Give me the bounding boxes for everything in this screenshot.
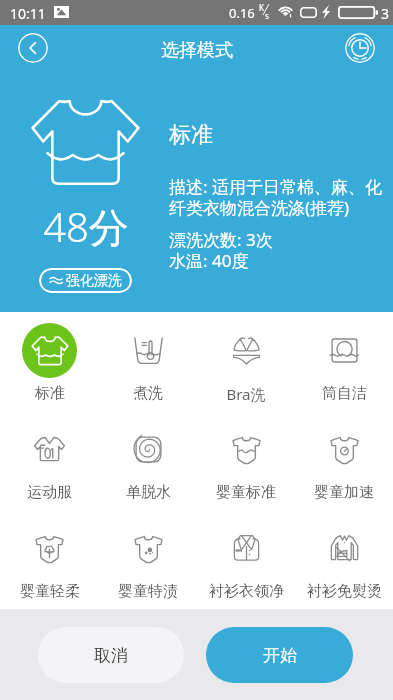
staticText: 描述: 适用于日常棉、麻、化 纤类衣物混合洗涤(推荐): [169, 175, 382, 220]
staticText: 取消: [94, 645, 128, 666]
button[interactable]: 单脱水: [99, 411, 197, 510]
staticText: 运动服: [27, 483, 72, 502]
button[interactable]: 婴童加速: [295, 411, 393, 510]
button[interactable]: 强化漂洗: [39, 268, 132, 293]
staticText: 选择模式: [161, 39, 233, 62]
staticText: 婴童标准: [216, 483, 276, 502]
button[interactable]: 衬衫衣领净: [197, 510, 295, 609]
staticText: 婴童加速: [314, 483, 374, 502]
staticText: 10:11: [10, 4, 46, 23]
staticText: Bra洗: [226, 384, 266, 404]
button[interactable]: 筒自洁: [295, 312, 393, 411]
staticText: s: [265, 10, 269, 21]
staticText: 煮洗: [133, 384, 163, 403]
staticText: 婴童特渍: [118, 582, 178, 601]
staticText: 48分: [43, 199, 129, 254]
button[interactable]: 婴童轻柔: [0, 510, 99, 609]
button[interactable]: Back: [18, 33, 48, 63]
staticText: 筒自洁: [322, 384, 367, 403]
staticText: 漂洗次数: 3次 水温: 40度: [169, 228, 273, 273]
button[interactable]: 标准: [0, 312, 99, 411]
button[interactable]: Timer: [345, 33, 375, 63]
staticText: 衬衫免熨烫: [307, 582, 382, 601]
staticText: K: [259, 2, 264, 13]
staticText: 衬衫衣领净: [209, 582, 284, 601]
button[interactable]: 取消: [38, 627, 184, 683]
button[interactable]: 衬衫免熨烫: [295, 510, 393, 609]
button[interactable]: 开始: [206, 627, 353, 683]
button[interactable]: Bra洗: [197, 312, 295, 411]
staticText: 开始: [263, 645, 297, 666]
staticText: 强化漂洗: [66, 272, 122, 290]
staticText: 3: [381, 4, 390, 23]
staticText: 0.16: [229, 4, 255, 22]
staticText: 标准: [35, 384, 65, 403]
staticText: 标准: [169, 121, 213, 149]
button[interactable]: 运动服: [0, 411, 99, 510]
staticText: 单脱水: [126, 483, 171, 502]
staticText: 婴童轻柔: [20, 582, 80, 601]
button[interactable]: 煮洗: [99, 312, 197, 411]
button[interactable]: 婴童特渍: [99, 510, 197, 609]
button[interactable]: 婴童标准: [197, 411, 295, 510]
